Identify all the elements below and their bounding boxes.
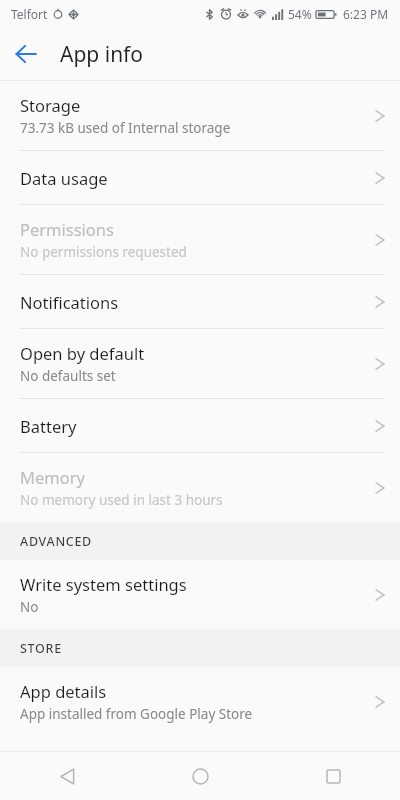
staticText: App info — [60, 40, 144, 69]
staticText: Permissions — [20, 218, 114, 240]
staticText: Memory — [20, 466, 85, 488]
staticText: No — [20, 598, 39, 616]
staticText: Data usage — [20, 167, 108, 189]
button[interactable]: App details — [0, 667, 400, 736]
button[interactable]: Storage — [0, 81, 400, 150]
button[interactable]: Permissions — [0, 205, 400, 274]
staticText: Open by default — [20, 342, 145, 364]
staticText: Telfort — [11, 6, 48, 22]
staticText: No memory used in last 3 hours — [20, 491, 223, 509]
button[interactable]: Home — [134, 752, 267, 800]
staticText: App installed from Google Play Store — [20, 705, 253, 723]
button[interactable]: Data usage — [0, 151, 400, 204]
staticText: App details — [20, 680, 107, 702]
button[interactable]: Recent apps — [267, 752, 400, 800]
button[interactable]: Back — [0, 752, 134, 800]
button[interactable]: Write system settings — [0, 560, 400, 629]
staticText: STORE — [20, 640, 62, 657]
staticText: 54% — [288, 6, 312, 22]
staticText: 6:23 PM — [343, 6, 389, 22]
button[interactable]: Back — [0, 28, 52, 80]
staticText: Write system settings — [20, 573, 187, 595]
staticText: 73.73 kB used of Internal storage — [20, 119, 231, 137]
staticText: ADVANCED — [20, 533, 92, 550]
staticText: Notifications — [20, 291, 119, 313]
staticText: Battery — [20, 415, 77, 437]
button[interactable]: Memory — [0, 453, 400, 522]
staticText: No defaults set — [20, 367, 116, 385]
button[interactable]: Battery — [0, 399, 400, 452]
button[interactable]: Open by default — [0, 329, 400, 398]
staticText: Storage — [20, 94, 81, 116]
staticText: No permissions requested — [20, 243, 187, 261]
button[interactable]: Notifications — [0, 275, 400, 328]
